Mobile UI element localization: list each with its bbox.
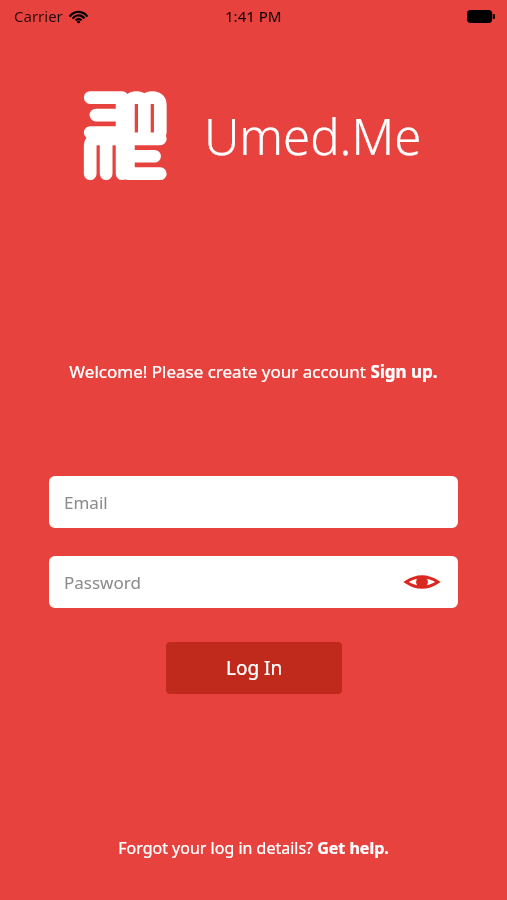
staticText: Umed.Me (204, 103, 422, 170)
staticText: 1:41 PM (225, 6, 282, 26)
button[interactable]: Log In (166, 642, 342, 694)
button[interactable]: Forgot your log in details? Get help. (118, 837, 389, 859)
button[interactable]: Show password (400, 560, 444, 604)
staticText: Password (64, 571, 141, 594)
staticText: Log In (226, 655, 283, 681)
button[interactable]: Welcome! Please create your account Sign… (69, 360, 438, 383)
staticText: Email (64, 491, 108, 514)
button[interactable]: Password (49, 556, 458, 608)
staticText: Carrier (14, 6, 63, 26)
button[interactable]: Email (49, 476, 458, 528)
